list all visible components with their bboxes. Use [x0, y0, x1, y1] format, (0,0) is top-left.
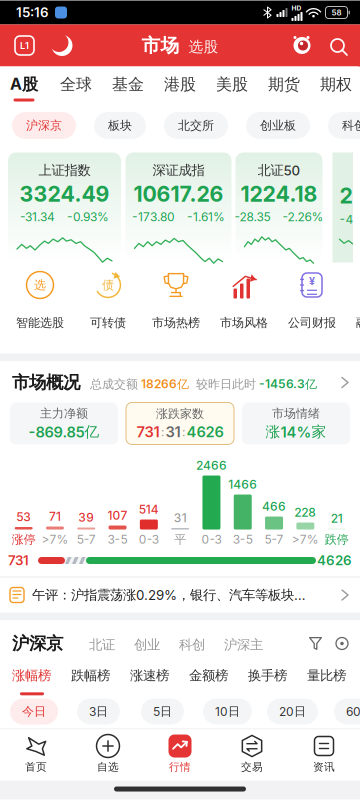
- staticText: 美股: [216, 75, 248, 94]
- staticText: 融资融券: [356, 315, 360, 330]
- staticText: 10日: [215, 704, 240, 719]
- staticText: 5-7: [265, 532, 284, 547]
- staticText: 涨幅榜: [12, 667, 51, 684]
- staticText: :: [182, 425, 185, 439]
- staticText: 市场: [141, 34, 179, 57]
- staticText: :: [161, 425, 164, 439]
- staticText: 4626: [186, 423, 223, 440]
- staticText: 3日: [89, 704, 108, 719]
- staticText: 沪深京: [26, 118, 62, 133]
- staticText: 60日: [346, 704, 360, 719]
- staticText: 换手榜: [248, 667, 287, 684]
- staticText: L1: [20, 40, 29, 51]
- staticText: 2466: [196, 458, 227, 472]
- staticText: 跌幅榜: [71, 667, 110, 684]
- staticText: -1.61%: [187, 210, 225, 224]
- staticText: -2.26%: [282, 210, 323, 224]
- staticText: 期权: [320, 75, 352, 94]
- staticText: 亿: [305, 377, 317, 392]
- staticText: 53: [16, 510, 31, 524]
- staticText: 亿: [177, 377, 189, 392]
- staticText: 沪深京: [12, 633, 63, 654]
- staticText: 交易: [241, 760, 263, 774]
- staticText: 731: [8, 553, 29, 568]
- staticText: HD: [291, 4, 301, 12]
- staticText: 5-7: [77, 532, 96, 547]
- staticText: -1456.3: [259, 377, 305, 391]
- staticText: 主力净额: [40, 406, 88, 421]
- staticText: 科创板: [342, 118, 360, 133]
- staticText: 15:16: [16, 5, 49, 20]
- staticText: 总成交额: [90, 377, 138, 392]
- staticText: 涨停: [12, 532, 36, 547]
- staticText: 1224.18: [240, 181, 317, 207]
- staticText: 2: [339, 183, 352, 208]
- staticText: >7%: [292, 532, 319, 547]
- staticText: 上证指数: [38, 162, 90, 178]
- staticText: 涨跌家数: [156, 406, 204, 421]
- staticText: -31.34: [20, 210, 55, 224]
- staticText: 选股: [188, 38, 218, 56]
- staticText: 创业板: [260, 118, 296, 133]
- staticText: 板块: [108, 118, 132, 133]
- staticText: 514: [139, 502, 159, 516]
- staticText: 107: [108, 508, 128, 522]
- staticText: 3-5: [233, 532, 253, 547]
- staticText: 可转债: [90, 315, 126, 330]
- staticText: 21: [331, 511, 343, 525]
- staticText: 金额榜: [189, 667, 228, 684]
- staticText: 较昨日此时: [196, 377, 256, 392]
- staticText: 选: [34, 278, 46, 292]
- staticText: -0.93%: [67, 210, 109, 224]
- staticText: 基金: [112, 75, 144, 94]
- staticText: 平: [174, 532, 186, 547]
- staticText: A股: [10, 74, 38, 94]
- staticText: -28.35: [234, 210, 270, 224]
- staticText: 31: [174, 511, 187, 525]
- staticText: 午评：沪指震荡涨0.29%，银行、汽车等板块…: [32, 587, 306, 603]
- staticText: 58: [331, 8, 341, 17]
- staticText: 1466: [228, 477, 257, 491]
- staticText: 3-5: [108, 532, 128, 547]
- staticText: 量比榜: [307, 667, 346, 684]
- staticText: 科创: [179, 637, 205, 653]
- staticText: 228: [294, 505, 316, 519]
- staticText: 北证50: [257, 162, 300, 178]
- staticText: 资讯: [313, 760, 335, 774]
- staticText: 市场概况: [12, 372, 80, 393]
- staticText: 期货: [268, 75, 300, 94]
- staticText: -173.80: [132, 210, 175, 224]
- staticText: 4626: [317, 553, 352, 568]
- staticText: 自选: [97, 760, 119, 774]
- staticText: 债: [102, 278, 114, 292]
- staticText: 行情: [169, 760, 191, 774]
- staticText: 北证: [89, 637, 115, 653]
- staticText: 创业: [134, 637, 160, 653]
- staticText: ¥: [309, 275, 315, 287]
- staticText: -869.85亿: [28, 423, 99, 441]
- staticText: 沪深主: [224, 637, 263, 653]
- staticText: 5日: [153, 704, 172, 719]
- staticText: 港股: [164, 75, 196, 94]
- staticText: 深证成指: [152, 162, 204, 178]
- staticText: 0-3: [201, 532, 221, 547]
- staticText: 10617.26: [133, 181, 223, 207]
- staticText: >7%: [41, 532, 68, 547]
- staticText: 0-3: [139, 532, 159, 547]
- staticText: -4: [339, 212, 353, 227]
- staticText: 智能选股: [16, 315, 64, 330]
- staticText: 市场风格: [220, 315, 268, 330]
- staticText: 北交所: [178, 118, 214, 133]
- staticText: 3324.49: [19, 181, 109, 207]
- staticText: 今日: [22, 704, 46, 719]
- staticText: 涨速榜: [130, 667, 169, 684]
- staticText: 31: [165, 423, 180, 440]
- staticText: 39: [78, 510, 94, 524]
- staticText: 市场热榜: [152, 315, 200, 330]
- staticText: 跌停: [325, 532, 349, 547]
- staticText: 全球: [60, 75, 92, 94]
- staticText: 466: [262, 499, 286, 513]
- staticText: 20日: [279, 704, 306, 719]
- staticText: 市场情绪: [272, 406, 320, 421]
- staticText: 涨14%家: [265, 423, 326, 441]
